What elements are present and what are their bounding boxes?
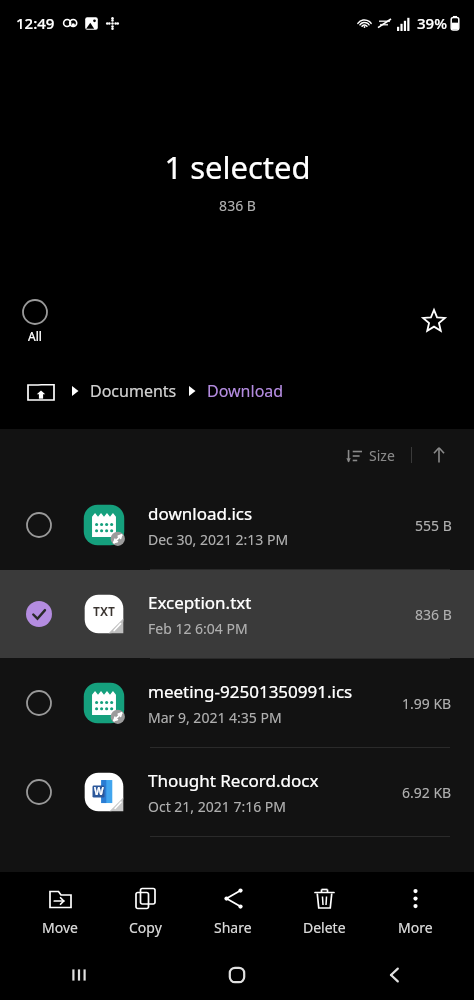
staticText: Thought Record.docx <box>148 769 319 792</box>
button[interactable]: meeting-92501350991.ics <box>0 659 474 747</box>
staticText: More <box>398 918 433 937</box>
button[interactable]: Download <box>207 380 284 402</box>
staticText: 555 B <box>415 516 452 535</box>
staticText: 39% <box>417 13 447 33</box>
staticText: All <box>28 328 42 344</box>
staticText: Feb 12 6:04 PM <box>148 619 248 638</box>
button[interactable]: Recent apps <box>55 951 103 999</box>
staticText: 1 selected <box>164 146 311 188</box>
button[interactable]: All <box>14 297 56 346</box>
staticText: Share <box>214 918 252 937</box>
button[interactable]: Home <box>213 951 261 999</box>
staticText: 836 B <box>415 605 452 624</box>
button[interactable]: download.ics <box>0 481 474 569</box>
staticText: 1.99 KB <box>402 694 452 713</box>
button[interactable]: Sort ascending <box>424 440 454 470</box>
staticText: Delete <box>303 918 346 937</box>
staticText: Download <box>207 380 284 402</box>
button[interactable]: TXT <box>0 570 474 658</box>
staticText: 12:49 <box>16 13 55 33</box>
button[interactable]: Delete <box>293 882 356 941</box>
staticText: Exception.txt <box>148 591 252 614</box>
staticText: 836 B <box>219 196 256 215</box>
staticText: Size <box>369 446 395 465</box>
staticText: Mar 9, 2021 4:35 PM <box>148 708 282 727</box>
button[interactable]: Add to favourites <box>414 301 454 341</box>
button[interactable]: W <box>0 748 474 836</box>
button[interactable]: Share <box>204 882 262 941</box>
button[interactable]: Copy <box>119 882 172 941</box>
staticText: meeting-92501350991.ics <box>148 680 353 703</box>
button[interactable]: Documents <box>90 380 177 402</box>
button[interactable]: Back <box>371 951 419 999</box>
staticText: W <box>94 784 104 798</box>
staticText: Dec 30, 2021 2:13 PM <box>148 530 289 549</box>
staticText: download.ics <box>148 502 253 525</box>
staticText: Oct 21, 2021 7:16 PM <box>148 797 287 816</box>
button[interactable]: More <box>388 882 443 941</box>
button[interactable]: Size <box>340 442 401 469</box>
staticText: Move <box>42 918 78 937</box>
staticText: Documents <box>90 380 177 402</box>
button[interactable]: Home folder <box>26 379 56 403</box>
button[interactable]: Move <box>32 882 88 941</box>
staticText: 6.92 KB <box>402 783 452 802</box>
staticText: TXT <box>93 603 115 619</box>
staticText: Copy <box>129 918 162 937</box>
